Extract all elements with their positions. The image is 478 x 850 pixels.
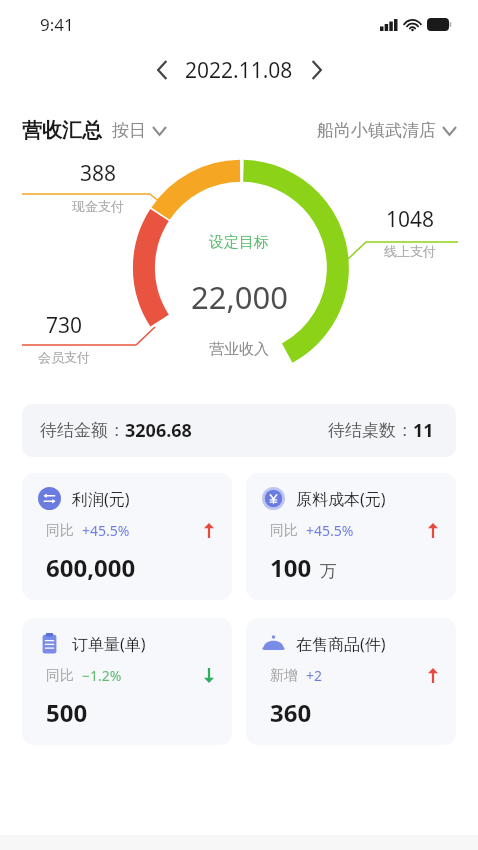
staticText: −1.2%	[82, 666, 122, 685]
staticText: 100	[270, 551, 312, 584]
staticText: 新增	[270, 667, 298, 685]
staticText: 3206.68	[125, 418, 192, 443]
staticText: 1048	[386, 205, 435, 234]
staticText: 同比	[270, 522, 298, 540]
staticText: 730	[46, 311, 83, 340]
button[interactable]: 按日	[112, 120, 166, 141]
staticText: 船尚小镇武清店	[317, 120, 436, 141]
staticText: 待结桌数：	[328, 420, 413, 441]
staticText: 设定目标	[209, 233, 269, 252]
button[interactable]: Previous day	[147, 55, 177, 85]
button[interactable]: Next day	[301, 55, 331, 85]
button[interactable]: 待结金额：	[22, 404, 456, 457]
button[interactable]: 利润(元)	[22, 473, 232, 600]
staticText: 利润(元)	[72, 488, 130, 510]
staticText: 营收汇总	[22, 118, 102, 143]
staticText: +45.5%	[306, 521, 354, 540]
staticText: 订单量(单)	[72, 633, 146, 655]
staticText: 600,000	[46, 551, 136, 584]
staticText: 现金支付	[72, 198, 124, 214]
staticText: 11	[413, 418, 434, 443]
button[interactable]: 原料成本(元)	[246, 473, 456, 600]
button[interactable]: 在售商品(件)	[246, 618, 456, 745]
staticText: 同比	[46, 522, 74, 540]
staticText: 会员支付	[38, 349, 90, 365]
staticText: 待结金额：	[40, 420, 125, 441]
staticText: 360	[270, 696, 312, 729]
staticText: 原料成本(元)	[296, 488, 386, 510]
button[interactable]: 船尚小镇武清店	[317, 120, 456, 141]
staticText: 在售商品(件)	[296, 633, 386, 655]
staticText: 388	[80, 159, 117, 188]
staticText: 营业收入	[209, 340, 269, 359]
staticText: 万	[320, 561, 337, 582]
staticText: 22,000	[191, 276, 288, 318]
staticText: +2	[306, 666, 323, 685]
staticText: 9:41	[40, 13, 74, 36]
staticText: 按日	[112, 120, 146, 141]
staticText: +45.5%	[82, 521, 130, 540]
staticText: 同比	[46, 667, 74, 685]
staticText: 线上支付	[384, 243, 436, 259]
staticText: 500	[46, 696, 88, 729]
button[interactable]: 订单量(单)	[22, 618, 232, 745]
staticText: 2022.11.08	[185, 56, 293, 85]
